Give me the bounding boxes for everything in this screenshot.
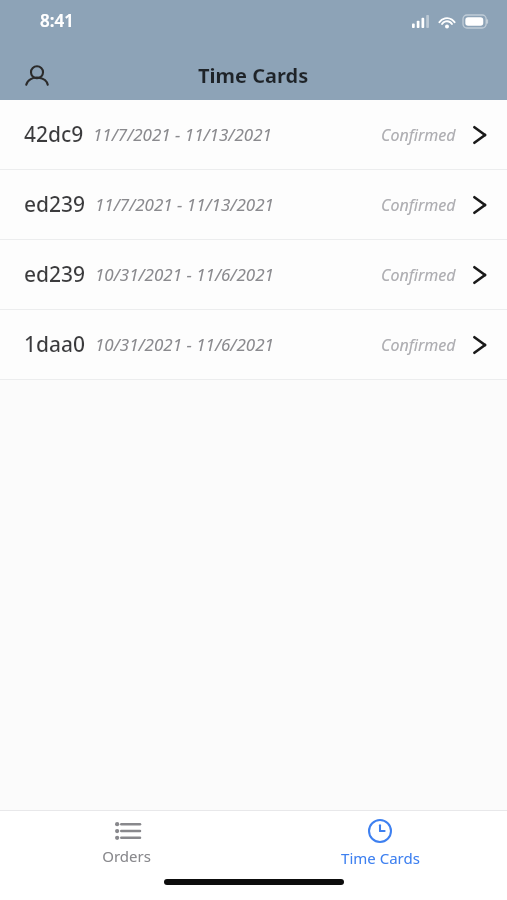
staticText: Time Cards xyxy=(341,848,420,868)
button[interactable]: Account xyxy=(14,54,60,100)
staticText: ed239 xyxy=(24,190,86,219)
button[interactable]: Time Cards xyxy=(253,813,507,874)
button[interactable]: ed239 xyxy=(0,170,507,239)
button[interactable]: 1daa0 xyxy=(0,310,507,379)
staticText: 1daa0 xyxy=(24,330,86,359)
staticText: ed239 xyxy=(24,260,86,289)
button[interactable]: Orders xyxy=(0,815,253,872)
staticText: Confirmed xyxy=(381,124,456,146)
button[interactable]: 42dc9 xyxy=(0,100,507,169)
staticText: Orders xyxy=(102,846,151,866)
staticText: 11/7/2021 - 11/13/2021 xyxy=(95,193,274,216)
staticText: 42dc9 xyxy=(24,120,84,149)
staticText: Confirmed xyxy=(381,264,456,286)
staticText: 11/7/2021 - 11/13/2021 xyxy=(93,123,272,146)
staticText: 10/31/2021 - 11/6/2021 xyxy=(95,333,274,356)
button[interactable]: ed239 xyxy=(0,240,507,309)
staticText: Time Cards xyxy=(198,62,309,89)
staticText: Confirmed xyxy=(381,334,456,356)
staticText: Confirmed xyxy=(381,194,456,216)
staticText: 8:41 xyxy=(40,9,74,32)
staticText: 10/31/2021 - 11/6/2021 xyxy=(95,263,274,286)
